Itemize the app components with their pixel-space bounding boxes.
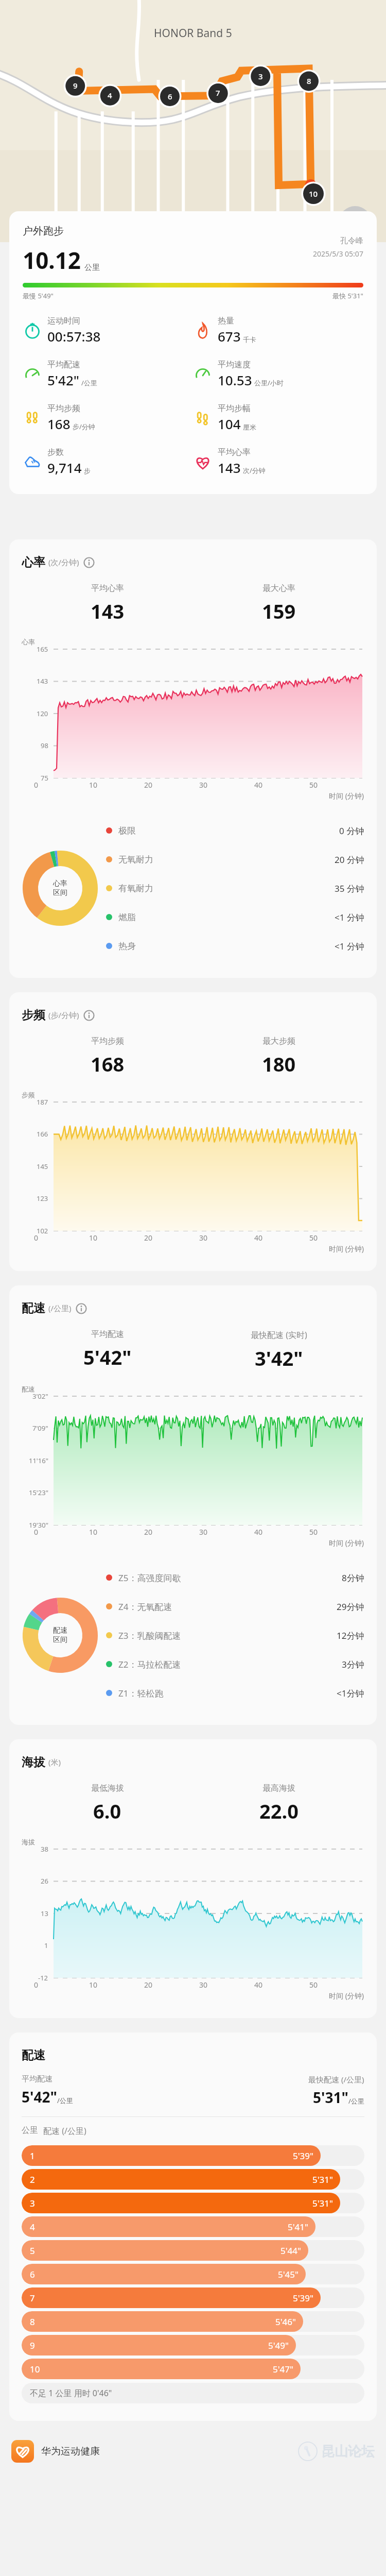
staticText: 步/分钟 — [73, 422, 95, 431]
staticText: 最快 5'31" — [332, 291, 363, 300]
staticText: 20 — [144, 1527, 199, 1537]
staticText: 燃脂 — [118, 912, 335, 923]
staticText: 180 — [262, 1050, 296, 1077]
button[interactable]: 不足 1 公里 用时 0'46" — [22, 2383, 364, 2403]
button[interactable]: 华为运动健康 — [11, 2440, 34, 2463]
button[interactable]: 热身 — [106, 931, 364, 960]
staticText: /公里 — [348, 2096, 364, 2106]
button[interactable]: Info — [83, 1010, 95, 1021]
staticText: Z5：高强度间歇 — [118, 1572, 342, 1584]
staticText: 次/分钟 — [243, 466, 266, 475]
button[interactable]: 平均配速 — [23, 360, 193, 389]
staticText: 38 — [41, 1844, 48, 1854]
staticText: 5'31" — [312, 2174, 333, 2185]
staticText: <1分钟 — [337, 1687, 364, 1699]
staticText: 50 — [309, 1980, 364, 1990]
staticText: <1 分钟 — [335, 911, 364, 923]
staticText: 165 — [37, 645, 48, 654]
staticText: -12 — [38, 1973, 48, 1982]
button[interactable]: Info — [83, 557, 95, 568]
button[interactable]: 极限 — [106, 816, 364, 845]
staticText: 区间 — [53, 888, 67, 897]
staticText: 5'49" — [268, 2340, 289, 2351]
button[interactable]: 步数 — [23, 447, 193, 477]
staticText: 千卡 — [243, 335, 256, 344]
button[interactable]: 平均步幅 — [193, 403, 363, 433]
button[interactable]: 运动时间 — [23, 316, 193, 345]
staticText: 心率 — [22, 555, 45, 570]
button[interactable]: 10 — [22, 2359, 364, 2379]
staticText: 20 — [144, 1233, 199, 1243]
staticText: 最大心率 — [262, 583, 295, 594]
staticText: <1 分钟 — [335, 940, 364, 952]
button[interactable]: Z2：马拉松配速 — [106, 1650, 364, 1679]
staticText: Z4：无氧配速 — [118, 1601, 337, 1613]
staticText: 昆山论坛 — [321, 2443, 375, 2460]
staticText: 3分钟 — [342, 1658, 364, 1670]
button[interactable]: 3 — [22, 2193, 364, 2213]
button[interactable]: 平均步频 — [23, 403, 193, 433]
button[interactable]: 8 — [22, 2311, 364, 2332]
button[interactable]: Profile — [339, 206, 372, 239]
staticText: 热量 — [218, 316, 234, 326]
staticText: 5'31" — [313, 2088, 348, 2107]
staticText: 159 — [262, 598, 296, 624]
button[interactable]: 9 — [22, 2335, 364, 2355]
staticText: 3'42" — [255, 1345, 303, 1371]
button[interactable]: 平均心率 — [193, 447, 363, 477]
staticText: 98 — [41, 741, 48, 750]
button[interactable]: 5 — [22, 2240, 364, 2261]
staticText: 1 — [30, 2150, 35, 2162]
staticText: 1 — [44, 1941, 48, 1950]
button[interactable]: 燃脂 — [106, 903, 364, 931]
button[interactable]: 有氧耐力 — [106, 874, 364, 903]
staticText: 华为运动健康 — [41, 2445, 100, 2458]
staticText: 00:57:38 — [47, 327, 101, 345]
staticText: 12分钟 — [337, 1630, 364, 1641]
staticText: 8分钟 — [342, 1572, 364, 1584]
staticText: 10 — [309, 189, 318, 199]
staticText: Z2：马拉松配速 — [118, 1658, 342, 1670]
staticText: 步频 — [22, 1091, 35, 1099]
staticText: 50 — [309, 780, 364, 790]
button[interactable]: Info — [76, 1303, 87, 1314]
staticText: 40 — [254, 780, 309, 790]
staticText: 平均心率 — [218, 447, 251, 457]
button[interactable]: 4 — [22, 2216, 364, 2237]
staticText: 3 — [258, 71, 263, 81]
button[interactable]: 2 — [22, 2169, 364, 2190]
staticText: 30 — [199, 1233, 254, 1243]
button[interactable]: Z3：乳酸阈配速 — [106, 1621, 364, 1650]
staticText: 29分钟 — [337, 1601, 364, 1613]
button[interactable]: 热量 — [193, 316, 363, 345]
button[interactable]: Z1：轻松跑 — [106, 1679, 364, 1707]
staticText: 公里 — [22, 2125, 38, 2136]
staticText: 6 — [30, 2268, 35, 2280]
staticText: 海拔 — [22, 1755, 45, 1770]
staticText: /公里 — [81, 378, 97, 387]
staticText: 6.0 — [93, 1798, 121, 1824]
staticText: 15'23" — [29, 1488, 48, 1497]
button[interactable]: Z4：无氧配速 — [106, 1592, 364, 1621]
staticText: 厘米 — [243, 423, 256, 431]
staticText: 9 — [30, 2340, 35, 2351]
staticText: 最高海拔 — [262, 1783, 295, 1793]
staticText: 102 — [37, 1226, 48, 1235]
button[interactable]: Z5：高强度间歇 — [106, 1563, 364, 1592]
staticText: 19'30" — [29, 1520, 48, 1530]
staticText: 步数 — [47, 447, 64, 457]
staticText: 配速 (/公里) — [43, 2125, 86, 2137]
button[interactable]: 无氧耐力 — [106, 845, 364, 874]
button[interactable]: 6 — [22, 2264, 364, 2284]
button[interactable]: 平均速度 — [193, 360, 363, 389]
staticText: 40 — [254, 1980, 309, 1990]
staticText: 5'39" — [293, 2292, 313, 2304]
staticText: 配速 — [22, 1385, 35, 1393]
staticText: 步 — [84, 467, 91, 475]
staticText: 20 — [144, 780, 199, 790]
staticText: 75 — [41, 773, 48, 783]
staticText: 0 — [34, 1233, 89, 1243]
button[interactable]: 7 — [22, 2287, 364, 2308]
staticText: 10.53 — [218, 371, 252, 389]
button[interactable]: 1 — [22, 2145, 364, 2166]
